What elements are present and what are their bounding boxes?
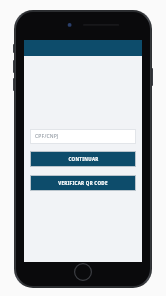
staticText: CPF/CNPJ [35,133,59,140]
button[interactable]: CPF/CNPJ [30,129,136,144]
button[interactable]: CONTINUAR [31,152,135,166]
button[interactable]: VERIFICAR QR CODE [31,176,135,190]
button[interactable]: Home [74,263,92,281]
staticText: CONTINUAR [68,156,99,162]
staticText: VERIFICAR QR CODE [58,180,108,186]
